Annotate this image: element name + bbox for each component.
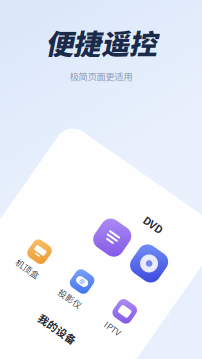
staticText: 我的设备 xyxy=(53,318,97,333)
staticText: 投影仪 xyxy=(54,287,81,300)
staticText: IPTV xyxy=(111,287,129,300)
staticText: 极简页面更适用 xyxy=(69,69,132,83)
staticText: 便捷遥控 xyxy=(45,22,157,62)
